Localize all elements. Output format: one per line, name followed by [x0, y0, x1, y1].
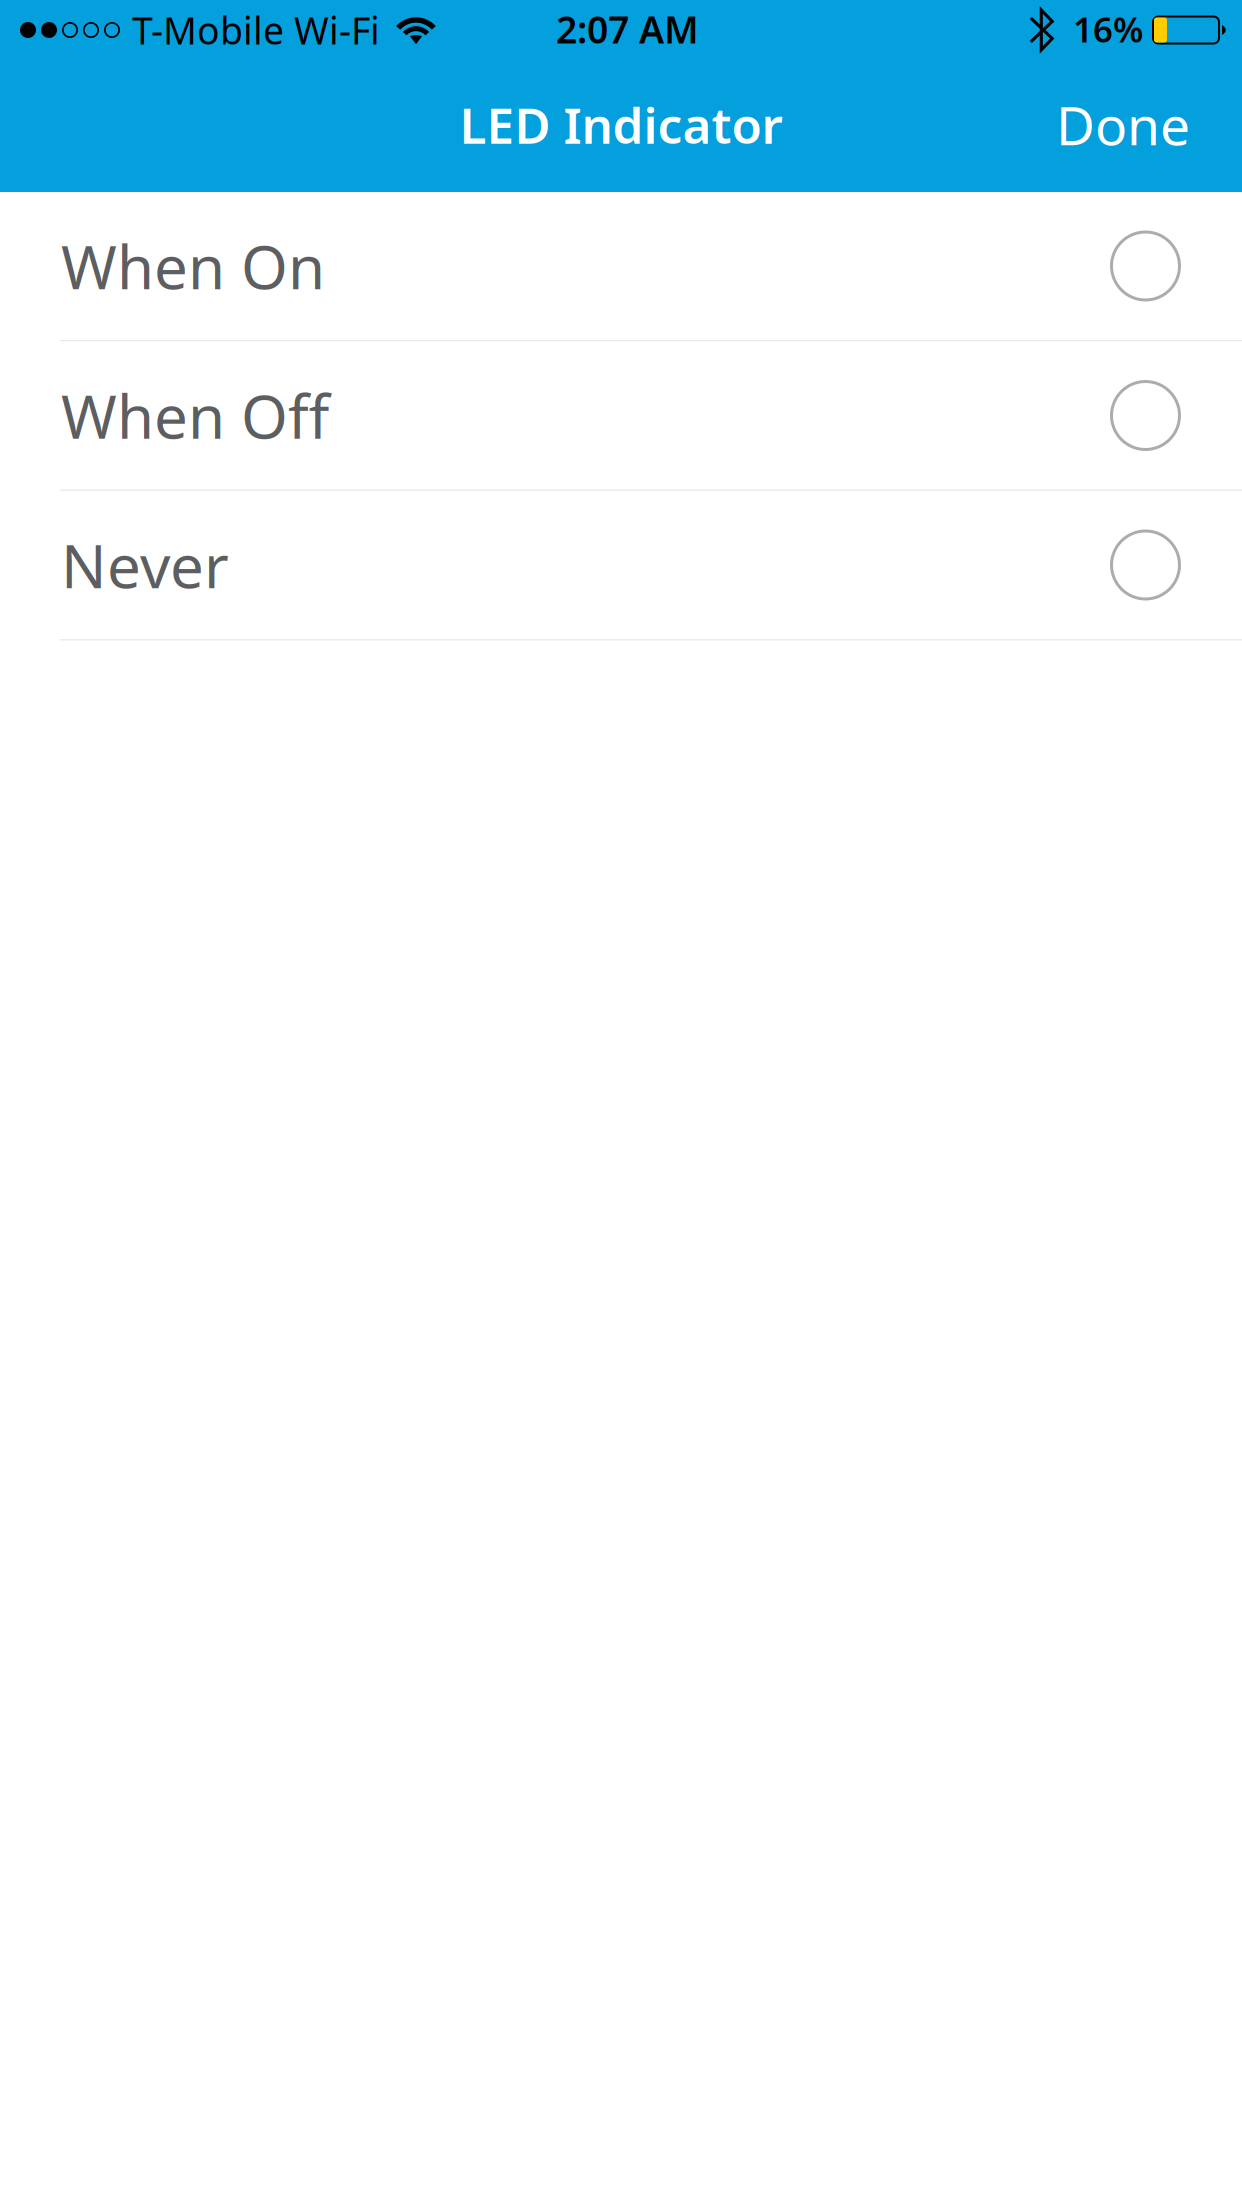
staticText: When Off	[61, 376, 329, 455]
button[interactable]: Done	[1016, 60, 1242, 192]
staticText: LED Indicator	[459, 92, 782, 157]
staticText: 2:07 AM	[556, 4, 699, 54]
button[interactable]: When On	[0, 192, 1242, 341]
staticText: Never	[61, 525, 229, 605]
staticText: When On	[61, 226, 325, 306]
staticText: Done	[1056, 89, 1190, 160]
staticText: T-Mobile Wi-Fi	[132, 5, 380, 55]
button[interactable]: Never	[0, 491, 1242, 640]
staticText: 16%	[1073, 6, 1143, 52]
button[interactable]: When Off	[0, 341, 1242, 491]
